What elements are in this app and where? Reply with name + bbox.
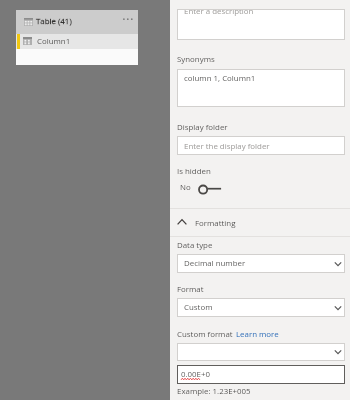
- staticText: Synonyms: [177, 54, 215, 65]
- button[interactable]: Decimal number: [177, 254, 345, 273]
- staticText: Display folder: [177, 122, 228, 133]
- staticText: Enter the display folder: [184, 141, 270, 152]
- button[interactable]: 0.00E+0: [177, 365, 345, 384]
- button[interactable]: column 1, Column1: [177, 69, 345, 107]
- button[interactable]: [177, 343, 345, 361]
- staticText: Formatting: [195, 218, 236, 229]
- button[interactable]: Enter a description: [177, 9, 345, 40]
- staticText: Custom format: [177, 329, 233, 340]
- button[interactable]: Enter the display folder: [177, 136, 345, 155]
- staticText: 0.00E+0: [181, 369, 211, 380]
- button[interactable]: More options: [116, 12, 136, 30]
- button[interactable]: No: [178, 180, 232, 198]
- button[interactable]: Formatting: [170, 208, 350, 234]
- button[interactable]: Column1: [16, 34, 138, 49]
- staticText: column 1, Column1: [184, 73, 256, 84]
- staticText: Enter a description: [184, 9, 254, 17]
- staticText: Column1: [37, 36, 71, 47]
- staticText: Table (41): [36, 16, 72, 27]
- staticText: Decimal number: [184, 258, 246, 269]
- staticText: No: [180, 182, 191, 193]
- button[interactable]: Custom: [177, 298, 345, 317]
- staticText: Custom: [184, 302, 213, 313]
- button[interactable]: Table (41): [16, 10, 138, 34]
- staticText: Is hidden: [177, 166, 211, 177]
- staticText: Format: [177, 284, 204, 295]
- button[interactable]: Learn more: [236, 329, 279, 340]
- staticText: Data type: [177, 240, 213, 251]
- staticText: Example: 1.23E+005: [177, 386, 251, 397]
